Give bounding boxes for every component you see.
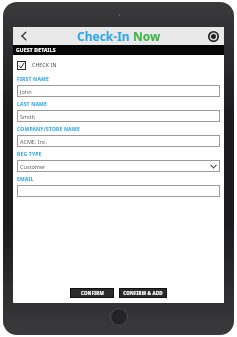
staticText: Smith [20,113,35,120]
button[interactable]: Customer [17,160,220,172]
staticText: John [20,88,32,95]
staticText: Check-In [77,28,133,44]
staticText: REG TYPE [17,151,42,158]
staticText: CHECK IN [32,62,57,69]
staticText: Now [133,28,161,44]
staticText: CONFIRM [81,290,104,296]
button[interactable]: Home [110,308,128,326]
staticText: Customer [20,163,46,170]
button[interactable]: John [17,85,220,97]
staticText: COMPANY/STORE NAME [17,126,80,133]
staticText: EMAIL [17,176,34,183]
staticText: GUEST DETAILS [16,47,56,54]
staticText: ACME, Inc. [20,138,48,145]
button[interactable]: CHECK IN [17,59,57,71]
staticText: LAST NAME [17,101,48,108]
button[interactable]: ACME, Inc. [17,135,220,147]
staticText: CONFIRM & ADD [123,290,163,296]
staticText: FIRST NAME [17,76,49,83]
button[interactable]: CONFIRM & ADD [119,288,167,298]
button[interactable]: CONFIRM [70,288,114,298]
button[interactable]: Settings [206,29,220,43]
button[interactable]: Back [13,27,35,45]
button[interactable] [17,185,220,197]
button[interactable]: Smith [17,110,220,122]
